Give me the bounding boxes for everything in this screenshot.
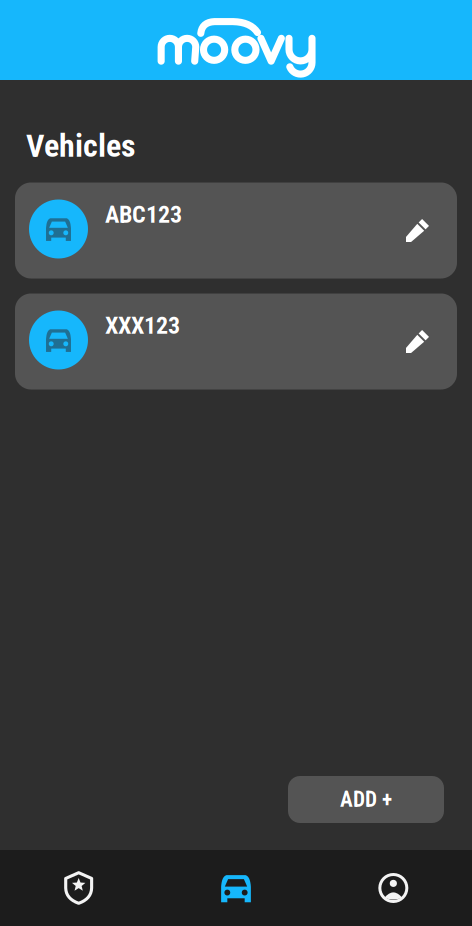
button[interactable]: ABC123 <box>15 182 457 278</box>
staticText: ABC123 <box>105 200 182 228</box>
staticText: ADD + <box>340 787 392 812</box>
button[interactable]: XXX123 <box>15 293 457 389</box>
staticText: XXX123 <box>105 311 180 339</box>
button[interactable]: Vehicles <box>157 850 315 926</box>
button[interactable]: Profile <box>315 850 472 926</box>
staticText: Vehicles <box>26 127 136 164</box>
button[interactable]: Coverage <box>0 850 157 926</box>
button[interactable]: ADD + <box>288 776 444 823</box>
